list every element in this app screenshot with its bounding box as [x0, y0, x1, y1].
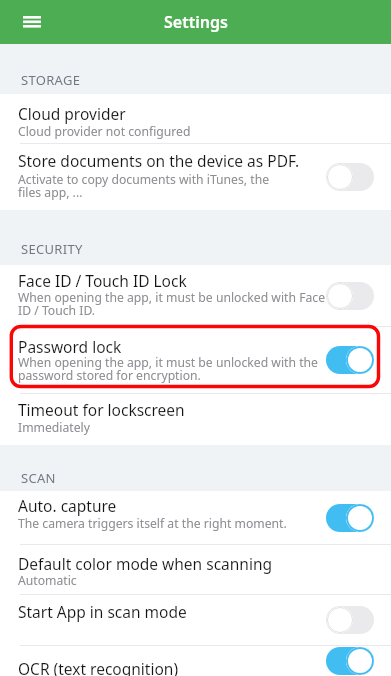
button[interactable] [326, 282, 374, 310]
button[interactable]: Auto. capture [0, 491, 391, 544]
button[interactable]: Store documents on the device as PDF. [0, 144, 391, 210]
staticText: The camera triggers itself at the right … [18, 515, 287, 532]
staticText: SCAN [21, 469, 56, 487]
staticText: Activate to copy documents with iTunes, … [18, 171, 270, 201]
button[interactable]: Default color mode when scanning [0, 545, 391, 594]
staticText: Immediately [18, 419, 90, 436]
button[interactable]: Cloud provider [0, 94, 391, 143]
button[interactable] [0, 0, 44, 44]
button[interactable] [326, 163, 374, 191]
staticText: When opening the app, it must be unlocke… [18, 354, 318, 384]
button[interactable]: Password lock [0, 327, 391, 393]
staticText: When opening the app, it must be unlocke… [18, 289, 326, 319]
staticText: Start App in scan mode [18, 601, 187, 622]
staticText: STORAGE [21, 71, 81, 89]
button[interactable]: Face ID / Touch ID Lock [0, 265, 391, 326]
staticText: Password lock [18, 336, 122, 357]
button[interactable]: Timeout for lockscreen [0, 394, 391, 445]
staticText: Settings [164, 11, 228, 33]
staticText: Cloud provider not configured [18, 123, 191, 140]
button[interactable]: Start App in scan mode [0, 595, 391, 645]
staticText: Store documents on the device as PDF. [18, 150, 300, 171]
staticText: SECURITY [21, 240, 83, 258]
button[interactable] [326, 606, 374, 634]
staticText: OCR (text recognition) [18, 658, 179, 676]
staticText: Auto. capture [18, 495, 117, 516]
staticText: Automatic [18, 572, 77, 589]
staticText: Cloud provider [18, 103, 126, 124]
staticText: Timeout for lockscreen [18, 399, 185, 420]
button[interactable] [326, 346, 374, 374]
staticText: Default color mode when scanning [18, 553, 273, 574]
button[interactable]: OCR (text recognition) [0, 646, 391, 676]
button[interactable] [326, 504, 374, 532]
button[interactable] [326, 647, 374, 675]
staticText: Face ID / Touch ID Lock [18, 270, 187, 291]
